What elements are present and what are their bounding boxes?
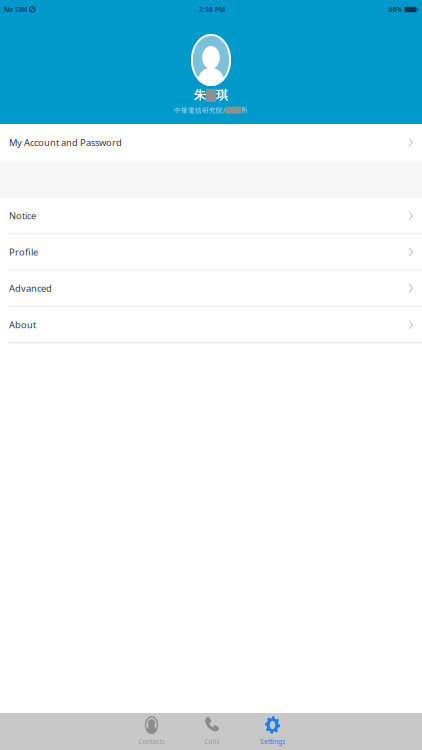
staticText: Contacts — [138, 737, 164, 746]
staticText: 2:36 PM — [199, 5, 225, 14]
staticText: About — [9, 318, 36, 331]
button[interactable]: Calls — [182, 713, 242, 750]
staticText: 中華電信研究院/ — [174, 106, 225, 115]
button[interactable]: Advanced — [0, 271, 422, 306]
staticText: 所 — [241, 106, 248, 114]
staticText: Settings — [260, 737, 285, 746]
staticText: Profile — [9, 246, 38, 258]
button[interactable]: Profile — [0, 234, 422, 270]
button[interactable]: Settings — [242, 713, 303, 750]
staticText: 朱 — [194, 88, 206, 103]
staticText: Notice — [9, 209, 36, 222]
button[interactable]: Notice — [0, 198, 422, 233]
staticText: Advanced — [9, 282, 52, 294]
button[interactable]: Contacts — [121, 713, 182, 750]
staticText: My Account and Password — [9, 136, 122, 149]
staticText: No SIM — [4, 5, 27, 14]
button[interactable]: My Account and Password — [0, 124, 422, 161]
staticText: Calls — [204, 737, 219, 746]
staticText: 86% — [388, 5, 402, 14]
staticText: 琪 — [216, 88, 228, 103]
button[interactable]: About — [0, 307, 422, 342]
